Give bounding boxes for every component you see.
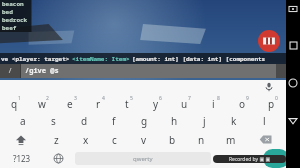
staticText: qwerty [133, 155, 153, 163]
button[interactable]: 8 [199, 94, 228, 112]
staticText: beef [2, 24, 17, 32]
button[interactable]: 0 [257, 94, 286, 112]
staticText: 3 [74, 95, 77, 102]
staticText: 0 [275, 95, 278, 102]
staticText: 9 [246, 95, 249, 102]
button[interactable]: 3 [56, 94, 84, 112]
staticText: x [83, 133, 89, 147]
button[interactable]: 4 [84, 94, 112, 112]
staticText: p [268, 97, 275, 111]
staticText: /give @s [25, 66, 59, 76]
staticText: a [20, 114, 26, 128]
staticText: beacon [2, 0, 24, 8]
staticText: u [181, 97, 188, 111]
button[interactable]: n [187, 130, 216, 149]
button[interactable]: b [158, 130, 187, 149]
button[interactable]: m [216, 130, 245, 149]
button[interactable]: l [249, 112, 279, 130]
staticText: f [112, 114, 116, 128]
button[interactable]: Shift [0, 130, 42, 149]
staticText: k [231, 114, 237, 128]
staticText: Recorded by ▣ ▣ [229, 156, 271, 163]
staticText: b [169, 133, 176, 147]
button[interactable]: Recent apps [287, 39, 299, 51]
button[interactable]: v [129, 130, 158, 149]
button[interactable]: s [38, 112, 69, 130]
staticText: 8 [217, 95, 220, 102]
button[interactable]: j [189, 112, 219, 130]
staticText: v [141, 133, 147, 147]
button[interactable]: 5 [112, 94, 141, 112]
staticText: j [203, 114, 206, 128]
staticText: w [38, 97, 46, 111]
staticText: c [112, 133, 117, 147]
button[interactable]: Back [287, 115, 299, 127]
button[interactable]: Backspace [245, 130, 286, 149]
button[interactable]: f [99, 112, 129, 130]
staticText: / [8, 66, 13, 76]
staticText: y [153, 97, 159, 111]
button[interactable]: Voice input [262, 80, 276, 94]
staticText: e [67, 97, 73, 111]
staticText: ?123 [13, 153, 31, 164]
staticText: 6 [159, 95, 162, 102]
staticText: h [171, 114, 178, 128]
staticText: bedrock [2, 16, 28, 24]
button[interactable]: c [100, 130, 129, 149]
button[interactable]: App logo [258, 30, 280, 52]
button[interactable]: a [7, 112, 38, 130]
staticText: d [81, 114, 88, 128]
button[interactable]: 1 [0, 94, 28, 112]
staticText: m [226, 133, 236, 147]
button[interactable]: z [42, 130, 71, 149]
staticText: z [54, 133, 59, 147]
button[interactable]: g [129, 112, 159, 130]
staticText: q [11, 97, 18, 111]
button[interactable]: x [71, 130, 100, 149]
staticText: 7 [188, 95, 191, 102]
staticText: 1 [18, 95, 21, 102]
staticText: ve <player: target> [1, 55, 70, 63]
button[interactable]: / [0, 64, 286, 78]
button[interactable]: 9 [228, 94, 257, 112]
staticText: l [263, 114, 266, 128]
staticText: t [125, 97, 129, 111]
staticText: o [239, 97, 246, 111]
staticText: 4 [102, 95, 105, 102]
button[interactable]: h [159, 112, 189, 130]
button[interactable]: k [219, 112, 249, 130]
staticText: n [198, 133, 205, 147]
staticText: 2 [46, 95, 49, 102]
button[interactable]: 7 [170, 94, 199, 112]
staticText: i [212, 97, 215, 111]
button[interactable]: 6 [141, 94, 170, 112]
button[interactable]: 2 [28, 94, 56, 112]
button[interactable]: Screenshot [287, 3, 299, 15]
staticText: <itemName: Item> [72, 55, 130, 63]
button[interactable]: Change language [43, 149, 73, 168]
button[interactable]: Enter [263, 149, 289, 168]
staticText: s [51, 114, 56, 128]
button[interactable]: ?123 [0, 149, 43, 168]
button[interactable]: Home [287, 77, 299, 89]
button[interactable]: d [69, 112, 99, 130]
staticText: g [141, 114, 148, 128]
staticText: [amount: int] [data: int] [components [132, 55, 266, 63]
button[interactable]: Space [75, 152, 211, 165]
staticText: 5 [130, 95, 133, 102]
staticText: bed [2, 8, 13, 16]
staticText: r [96, 97, 101, 111]
